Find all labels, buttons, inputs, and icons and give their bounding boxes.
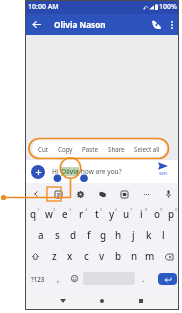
button[interactable]: o	[149, 204, 164, 225]
staticText: 3	[69, 207, 72, 213]
button[interactable]: Home	[92, 291, 112, 310]
button[interactable]: d	[65, 225, 81, 246]
staticText: k	[146, 229, 152, 242]
staticText: j	[132, 229, 135, 242]
button[interactable]: x	[62, 246, 78, 267]
button[interactable]: Previous	[29, 187, 43, 201]
staticText: i	[140, 208, 143, 221]
button[interactable]: More	[139, 187, 153, 201]
staticText: w	[45, 208, 53, 221]
staticText: o	[154, 208, 160, 221]
staticText: 4	[85, 207, 88, 213]
staticText: Select all	[134, 145, 160, 153]
button[interactable]: Shift	[25, 246, 46, 267]
staticText: Cut	[38, 145, 48, 153]
staticText: 7	[130, 207, 133, 213]
button[interactable]: j	[126, 225, 141, 246]
button[interactable]: Copy	[58, 140, 73, 157]
staticText: y	[109, 208, 115, 221]
button[interactable]: a	[33, 225, 49, 246]
button[interactable]: ,	[50, 267, 66, 290]
button[interactable]: l	[156, 225, 171, 246]
staticText: n	[131, 250, 138, 263]
button[interactable]: Settings	[73, 187, 87, 201]
button[interactable]: Share	[108, 140, 125, 157]
staticText: ,	[57, 273, 60, 284]
button[interactable]: v	[94, 246, 110, 267]
button[interactable]: Recents	[131, 291, 151, 310]
button[interactable]: Back	[53, 291, 73, 310]
button[interactable]: More options	[165, 14, 179, 35]
button[interactable]: m	[142, 246, 158, 267]
button[interactable]: s	[49, 225, 65, 246]
button[interactable]: z	[46, 246, 62, 267]
button[interactable]: q	[25, 204, 41, 225]
button[interactable]: h	[111, 225, 126, 246]
button[interactable]: Enter	[158, 273, 177, 285]
button[interactable]: Paste	[82, 140, 98, 157]
button[interactable]: p	[164, 204, 179, 225]
button[interactable]: r	[73, 204, 89, 225]
staticText: m	[145, 250, 155, 263]
staticText: t	[95, 208, 99, 221]
button[interactable]: Voice input	[161, 187, 175, 201]
staticText: s	[55, 229, 60, 242]
button[interactable]: Backspace	[158, 246, 179, 267]
staticText: 6	[115, 207, 118, 213]
staticText: 9	[160, 207, 163, 213]
button[interactable]: w	[41, 204, 57, 225]
staticText: ?123	[31, 275, 45, 283]
staticText: g	[100, 229, 107, 242]
staticText: d	[70, 229, 77, 242]
button[interactable]: Send SMS	[154, 162, 172, 181]
staticText: 10:00 AM	[28, 2, 59, 12]
button[interactable]: g	[96, 225, 111, 246]
staticText: c	[84, 250, 89, 263]
button[interactable]: Add attachment	[31, 165, 45, 179]
button[interactable]: Back	[25, 14, 47, 35]
staticText: r	[79, 208, 84, 221]
staticText: p	[168, 208, 175, 221]
staticText: Hi	[52, 167, 59, 176]
staticText: Paste	[82, 145, 98, 153]
button[interactable]: .	[135, 267, 152, 290]
button[interactable]: k	[141, 225, 156, 246]
staticText: h	[115, 229, 122, 242]
staticText: 0	[175, 207, 178, 213]
button[interactable]: ?123	[25, 267, 50, 290]
button[interactable]: u	[119, 204, 134, 225]
button[interactable]: Call	[147, 14, 165, 35]
staticText: u	[123, 208, 130, 221]
staticText: 5	[100, 207, 103, 213]
staticText: Copy	[58, 145, 73, 153]
button[interactable]: n	[126, 246, 142, 267]
staticText: z	[52, 250, 57, 263]
button[interactable]: e	[57, 204, 73, 225]
staticText: f	[87, 229, 91, 242]
staticText: a	[38, 229, 44, 242]
button[interactable]: Stickers	[95, 187, 109, 201]
staticText: b	[115, 250, 122, 263]
staticText: Olivia Nason	[54, 19, 106, 30]
button[interactable]: c	[78, 246, 94, 267]
button[interactable]: Emoji	[66, 267, 83, 290]
button[interactable]: i	[134, 204, 149, 225]
button[interactable]: GIF	[117, 187, 131, 201]
staticText: 2	[53, 207, 56, 213]
button[interactable]: y	[104, 204, 119, 225]
staticText: SMS	[159, 171, 168, 177]
button[interactable]: b	[110, 246, 126, 267]
button[interactable]: Clipboard	[51, 187, 65, 201]
staticText: q	[30, 208, 37, 221]
staticText: Olivia	[61, 167, 79, 176]
button[interactable]: Cut	[38, 140, 48, 157]
button[interactable]: Select all	[134, 140, 160, 157]
staticText: Share	[108, 145, 125, 153]
staticText: x	[67, 250, 73, 263]
staticText: 100%	[159, 2, 177, 12]
button[interactable]: f	[81, 225, 96, 246]
staticText: 8	[145, 207, 148, 213]
button[interactable]: t	[89, 204, 104, 225]
staticText: l	[162, 229, 165, 242]
